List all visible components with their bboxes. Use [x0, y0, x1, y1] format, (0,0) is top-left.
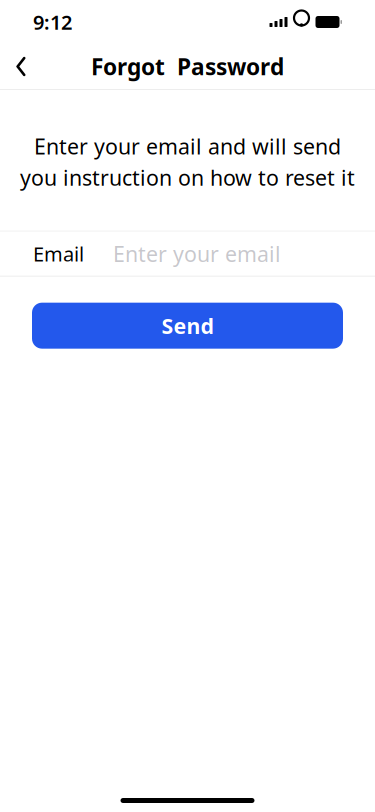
- staticText: Forgot Password: [91, 51, 284, 81]
- button[interactable]: Send: [32, 303, 343, 349]
- staticText: Send: [161, 311, 213, 340]
- staticText: 9:12: [33, 9, 72, 35]
- button[interactable]: Email: [0, 232, 375, 276]
- staticText: Email: [33, 240, 84, 267]
- staticText: you instruction on how to reset it: [20, 163, 355, 192]
- staticText: Enter your email and will send: [34, 132, 341, 160]
- staticText: Enter your email: [113, 239, 281, 268]
- button[interactable]: Back: [4, 44, 38, 88]
